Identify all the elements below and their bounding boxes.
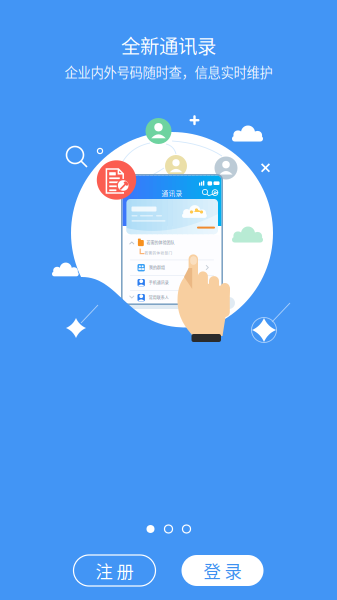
staticText: 若需的体验团队: [146, 240, 174, 246]
staticText: 若需的体验部门: [144, 250, 172, 256]
staticText: 登 录: [203, 558, 241, 583]
staticText: 我的群组: [149, 265, 165, 271]
button[interactable]: 注 册: [73, 555, 155, 586]
staticText: 企业内外号码随时查，信息实时维护: [64, 62, 272, 81]
staticText: 通讯录: [161, 188, 182, 198]
staticText: 注 册: [95, 558, 133, 583]
staticText: 手机通讯录: [149, 280, 169, 286]
staticText: 常用联系人: [149, 295, 169, 301]
staticText: 全新通讯录: [121, 31, 216, 59]
button[interactable]: 登 录: [181, 555, 263, 586]
